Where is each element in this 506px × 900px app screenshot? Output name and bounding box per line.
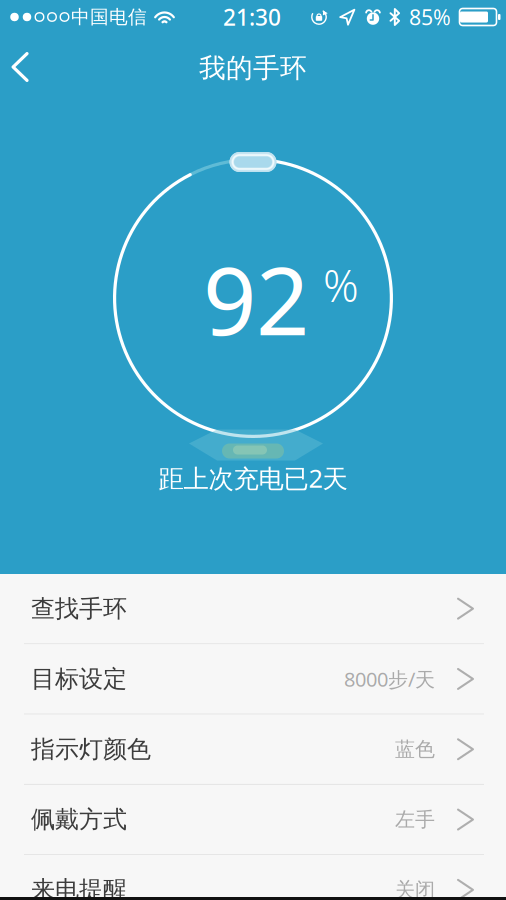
staticText: 关闭 [395, 878, 435, 900]
button[interactable]: 佩戴方式 [0, 785, 506, 854]
staticText: 21:30 [223, 2, 281, 32]
button[interactable]: 目标设定 [0, 644, 506, 714]
button[interactable]: 查找手环 [0, 574, 506, 643]
staticText: 距上次充电已2天 [158, 461, 347, 495]
staticText: 92 [203, 237, 309, 361]
button[interactable]: 指示灯颜色 [0, 715, 506, 784]
staticText: % [323, 256, 359, 314]
staticText: 来电提醒 [31, 875, 127, 900]
button[interactable]: Back [0, 38, 47, 96]
staticText: 蓝色 [395, 737, 435, 762]
staticText: 8000步/天 [344, 666, 435, 692]
button[interactable]: 来电提醒 [0, 855, 506, 900]
staticText: 中国电信 [71, 5, 147, 28]
staticText: 查找手环 [31, 594, 127, 623]
staticText: 我的手环 [199, 52, 307, 84]
staticText: 佩戴方式 [31, 805, 127, 834]
staticText: 85% [409, 3, 451, 31]
staticText: 左手 [395, 807, 435, 832]
staticText: 目标设定 [31, 664, 127, 694]
staticText: 指示灯颜色 [31, 734, 151, 764]
